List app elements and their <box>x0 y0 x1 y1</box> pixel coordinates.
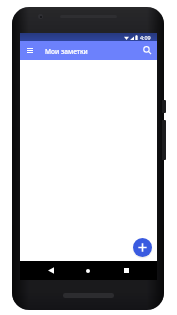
staticText: 4:09 <box>140 34 151 41</box>
button[interactable]: Search <box>142 45 153 56</box>
button[interactable]: Back <box>32 261 69 280</box>
staticText: Мои заметки <box>45 47 88 56</box>
button[interactable]: Home <box>69 261 107 280</box>
button[interactable]: Menu <box>24 45 35 56</box>
button[interactable]: Recents <box>107 261 145 280</box>
button[interactable]: Add note <box>133 238 152 257</box>
